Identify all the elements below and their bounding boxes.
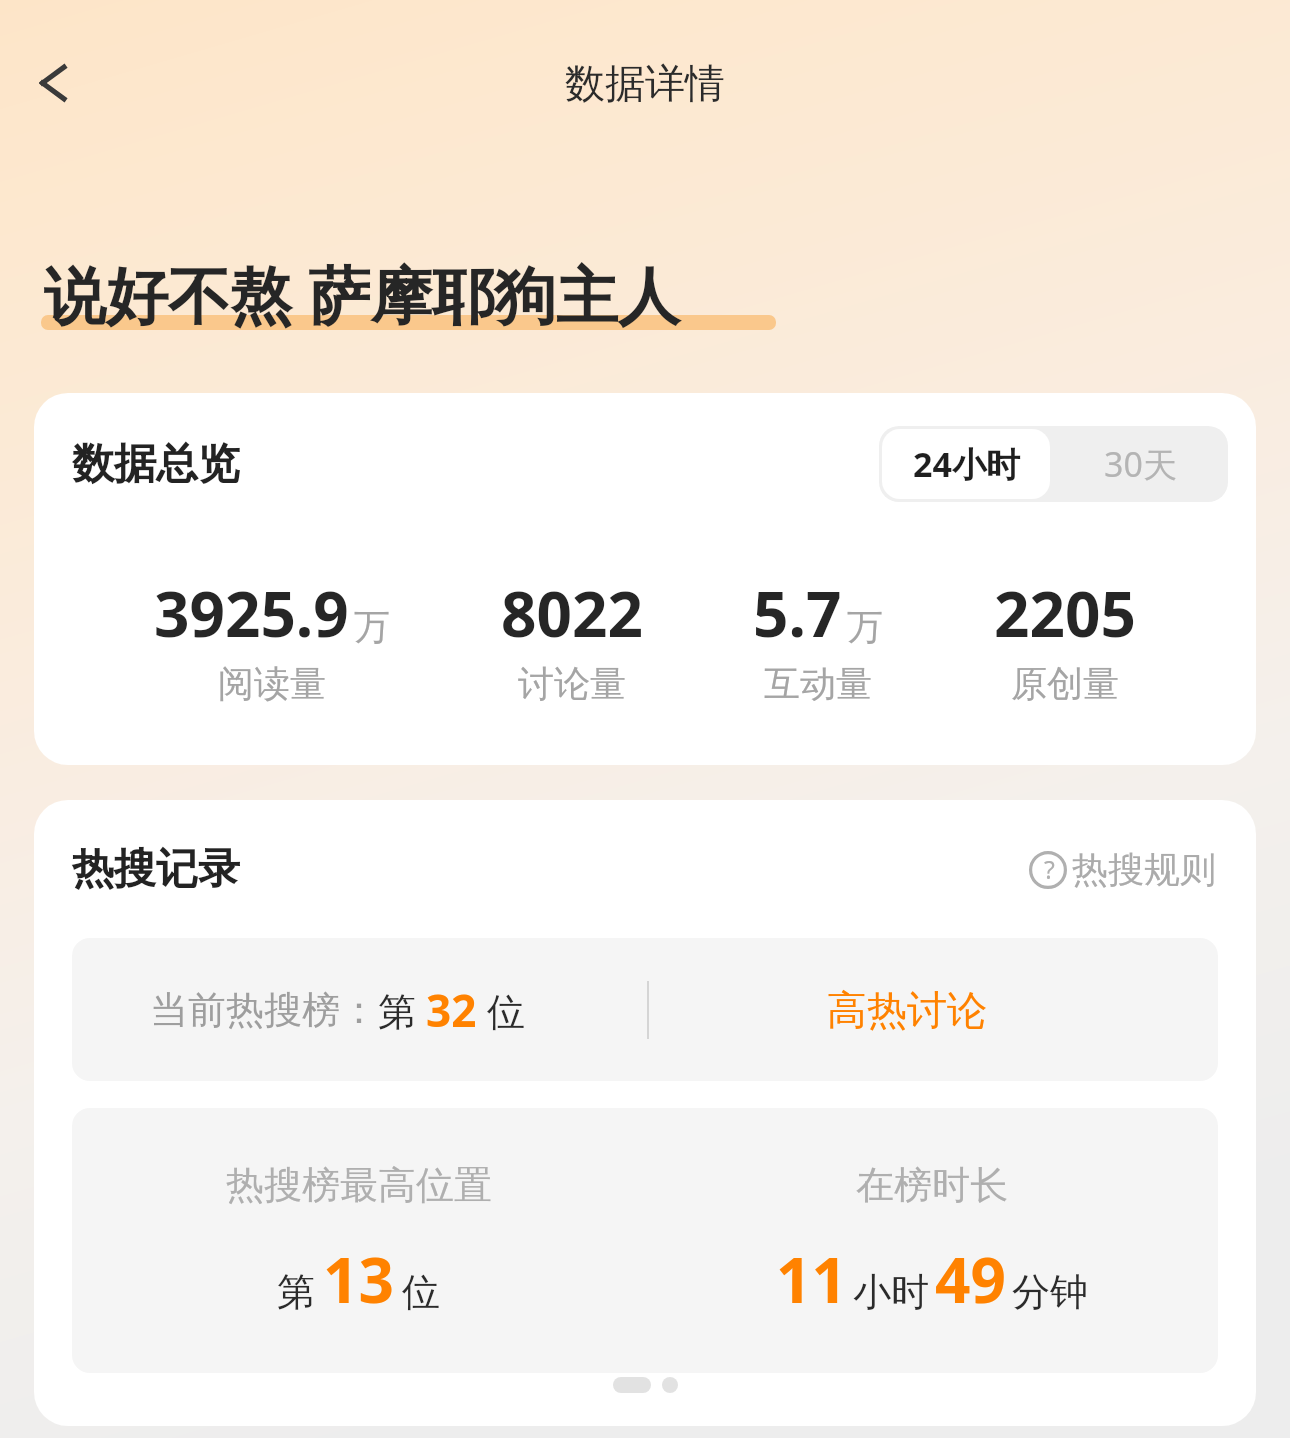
button[interactable]: 24小时 xyxy=(882,429,1050,499)
button[interactable]: ? xyxy=(1029,847,1226,892)
button[interactable]: 当前热搜榜： xyxy=(72,938,1218,1081)
staticText: 热搜榜最高位置 xyxy=(226,1161,492,1209)
staticText: 11 xyxy=(776,1237,847,1321)
staticText: ? xyxy=(1044,852,1055,886)
button[interactable]: Back xyxy=(14,40,100,126)
staticText: 数据总览 xyxy=(72,438,240,491)
button[interactable]: 30天 xyxy=(1053,426,1228,502)
staticText: 8022 xyxy=(501,571,643,655)
staticText: 位 xyxy=(477,984,525,1036)
button[interactable]: 热搜榜最高位置 xyxy=(72,1108,1218,1373)
staticText: 互动量 xyxy=(764,661,872,706)
staticText: 小时 xyxy=(853,1268,929,1316)
staticText: 32 xyxy=(426,980,477,1040)
staticText: 原创量 xyxy=(1011,661,1119,706)
staticText: 万 xyxy=(847,604,883,649)
staticText: 阅读量 xyxy=(218,661,326,706)
staticText: 5.7 xyxy=(753,571,842,655)
staticText: 高热讨论 xyxy=(827,985,987,1035)
staticText: 万 xyxy=(354,604,390,649)
staticText: 第 xyxy=(277,1268,315,1316)
staticText: 热搜记录 xyxy=(72,843,240,896)
staticText: 49 xyxy=(935,1237,1006,1321)
staticText: 3925.9 xyxy=(154,571,349,655)
staticText: 30天 xyxy=(1104,441,1177,487)
staticText: 在榜时长 xyxy=(856,1161,1008,1209)
staticText: 说好不熬 萨摩耶狗主人 xyxy=(44,252,681,337)
staticText: 13 xyxy=(323,1237,394,1321)
staticText: 2205 xyxy=(994,571,1136,655)
staticText: 位 xyxy=(402,1268,440,1316)
staticText: 讨论量 xyxy=(518,661,626,706)
staticText: 第 xyxy=(378,984,426,1036)
staticText: 24小时 xyxy=(913,441,1020,487)
staticText: 数据详情 xyxy=(565,58,725,108)
staticText: 热搜规则 xyxy=(1072,847,1216,892)
staticText: 分钟 xyxy=(1012,1268,1088,1316)
staticText: 当前热搜榜： xyxy=(150,986,378,1034)
